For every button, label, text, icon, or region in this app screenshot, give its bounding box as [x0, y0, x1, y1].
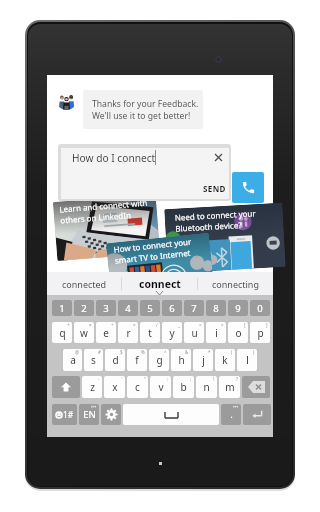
button[interactable]: c	[127, 376, 148, 398]
staticText: connected	[62, 278, 107, 290]
button[interactable]: b	[173, 376, 194, 398]
staticText: 1	[59, 302, 65, 315]
button[interactable]: a	[63, 349, 82, 371]
staticText: w	[80, 326, 88, 340]
staticText: 9	[235, 302, 241, 315]
staticText: :	[167, 376, 169, 382]
button[interactable]: r	[118, 322, 138, 343]
button[interactable]: connected	[47, 272, 121, 295]
button[interactable]: Call	[232, 172, 264, 203]
button[interactable]: n	[196, 376, 217, 398]
staticText: a	[70, 353, 76, 367]
staticText: +	[67, 322, 70, 328]
staticText: @	[75, 349, 80, 355]
button[interactable]: 9	[228, 300, 248, 316]
button[interactable]: connecting	[198, 272, 273, 295]
staticText: Bluetooth device?	[175, 219, 243, 234]
button[interactable]: o	[228, 322, 248, 343]
button[interactable]: s	[84, 349, 103, 371]
staticText: n	[203, 380, 210, 394]
button[interactable]: u	[184, 322, 204, 343]
button[interactable]: w	[74, 322, 94, 343]
button[interactable]: 0	[250, 300, 270, 316]
staticText: ÷	[111, 322, 114, 328]
staticText: g	[156, 353, 163, 367]
button[interactable]	[123, 404, 219, 425]
staticText: Need to connect your	[174, 207, 256, 223]
staticText: b	[180, 380, 187, 394]
button[interactable]: 8	[206, 300, 226, 316]
staticText: Learn and connect with	[59, 197, 149, 215]
button[interactable]: h	[171, 349, 191, 371]
staticText: ^	[164, 349, 167, 355]
button[interactable]: 6	[162, 300, 182, 316]
button[interactable]: 4	[118, 300, 138, 316]
staticText: <	[199, 322, 202, 328]
staticText: •••	[91, 404, 97, 410]
button[interactable]: .	[221, 404, 241, 425]
button[interactable]: •••	[101, 404, 121, 425]
staticText: )	[253, 349, 255, 355]
staticText: c	[135, 380, 140, 394]
button[interactable]: Need to connect your	[164, 203, 286, 273]
button[interactable]: g	[149, 349, 169, 371]
staticText: /	[156, 322, 158, 328]
staticText: *	[208, 349, 211, 355]
button[interactable]	[243, 404, 271, 425]
button[interactable]: f	[127, 349, 147, 371]
button[interactable]: 5	[140, 300, 160, 316]
button[interactable]: Clear text	[213, 152, 224, 163]
button[interactable]: SEND	[201, 181, 228, 196]
staticText: EN	[83, 408, 96, 421]
button[interactable]: m	[219, 376, 240, 398]
button[interactable]	[52, 376, 80, 398]
button[interactable]: 3	[96, 300, 116, 316]
staticText: i	[215, 326, 218, 340]
button[interactable]: p	[250, 322, 270, 343]
staticText: p	[257, 326, 264, 340]
staticText: 8	[213, 302, 219, 315]
button[interactable]: j	[193, 349, 213, 371]
button[interactable]: t	[140, 322, 160, 343]
button[interactable]: Learn and connect with	[53, 194, 160, 261]
staticText: 3	[103, 302, 109, 315]
staticText: z	[90, 380, 95, 394]
staticText: -	[98, 376, 100, 382]
button[interactable]: 1	[52, 300, 72, 316]
staticText: Thanks for your Feedback.	[92, 98, 199, 110]
button[interactable]: 2	[74, 300, 94, 316]
staticText: 5	[147, 302, 153, 315]
button[interactable]: y	[162, 322, 182, 343]
staticText: 0	[257, 302, 263, 315]
staticText: e	[103, 326, 109, 340]
staticText: connect	[139, 277, 181, 291]
button[interactable]: 7	[184, 300, 204, 316]
button[interactable]: q	[52, 322, 72, 343]
button[interactable]	[242, 376, 270, 398]
button[interactable]: k	[215, 349, 235, 371]
button[interactable]: i	[206, 322, 226, 343]
staticText: ?	[236, 376, 238, 382]
button[interactable]: How to connect your	[106, 233, 213, 285]
staticText: 1#	[63, 409, 74, 421]
staticText: t	[148, 326, 152, 340]
staticText: (	[231, 349, 233, 355]
staticText: x	[112, 380, 118, 394]
button[interactable]: z	[82, 376, 102, 398]
staticText: r	[126, 326, 131, 340]
button[interactable]: l	[237, 349, 257, 371]
staticText: #	[98, 349, 101, 355]
button[interactable]: d	[105, 349, 125, 371]
staticText: $	[120, 349, 123, 355]
staticText: 7	[191, 302, 197, 315]
button[interactable]: x	[104, 376, 125, 398]
button[interactable]: e	[96, 322, 116, 343]
button[interactable]: v	[150, 376, 171, 398]
staticText: %	[141, 349, 145, 355]
button[interactable]: connect	[122, 272, 197, 295]
button[interactable]: 1#	[52, 404, 77, 425]
staticText: ×	[89, 322, 92, 328]
button[interactable]: EN	[79, 404, 99, 425]
staticText: others on LinkedIn	[60, 209, 131, 226]
